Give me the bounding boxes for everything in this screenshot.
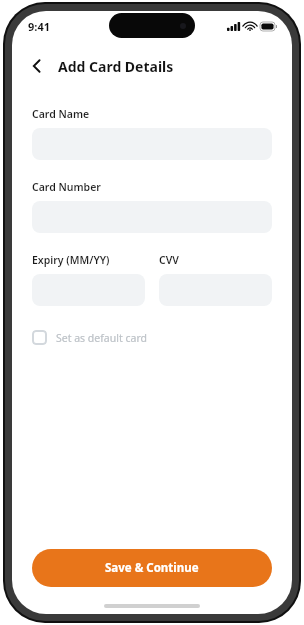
staticText: Add Card Details: [58, 57, 174, 76]
button[interactable]: Back: [22, 51, 52, 81]
button[interactable]: Save & Continue: [32, 549, 272, 587]
staticText: 9:41: [28, 19, 50, 34]
staticText: Expiry (MM/YY): [32, 253, 110, 267]
staticText: Set as default card: [56, 331, 147, 345]
staticText: Save & Continue: [105, 560, 199, 576]
button[interactable]: Set as default card: [32, 328, 147, 347]
staticText: CVV: [159, 253, 179, 267]
staticText: Card Name: [32, 107, 90, 121]
staticText: Card Number: [32, 180, 101, 194]
